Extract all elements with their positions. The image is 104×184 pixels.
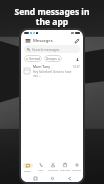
button[interactable]: Settings [71,160,83,174]
button[interactable]: Unread [24,55,42,62]
button[interactable]: Open navigation menu [24,37,31,44]
staticText: Mom Tony [33,64,73,69]
staticText: Unread [29,57,40,61]
staticText: Groups [46,57,57,61]
button[interactable]: Contacts [47,160,59,174]
button[interactable]: Search messages [24,45,80,53]
button[interactable]: Groups [44,55,62,62]
button[interactable]: Back [66,175,72,181]
staticText: Send messages in the app [0,6,104,28]
staticText: 10:37 [73,65,80,69]
staticText: Search messages [32,47,60,52]
staticText: Contacts [48,168,58,171]
button[interactable]: Chats [21,160,34,174]
staticText: Chats [24,169,31,172]
button[interactable]: Home [49,175,55,181]
staticText: Messages [33,38,53,44]
button[interactable]: Organize [59,160,71,174]
staticText: Hey Salonlam! Great to have you ... [33,70,80,77]
button[interactable]: Recents [32,175,38,181]
button[interactable]: Calls [34,160,47,174]
button[interactable]: Sort [74,56,80,62]
staticText: Calls [38,168,44,171]
button[interactable]: Mom Tony [21,64,83,77]
button[interactable]: Compose new message [73,37,80,44]
staticText: Organize [60,168,71,171]
staticText: Settings [72,168,82,171]
